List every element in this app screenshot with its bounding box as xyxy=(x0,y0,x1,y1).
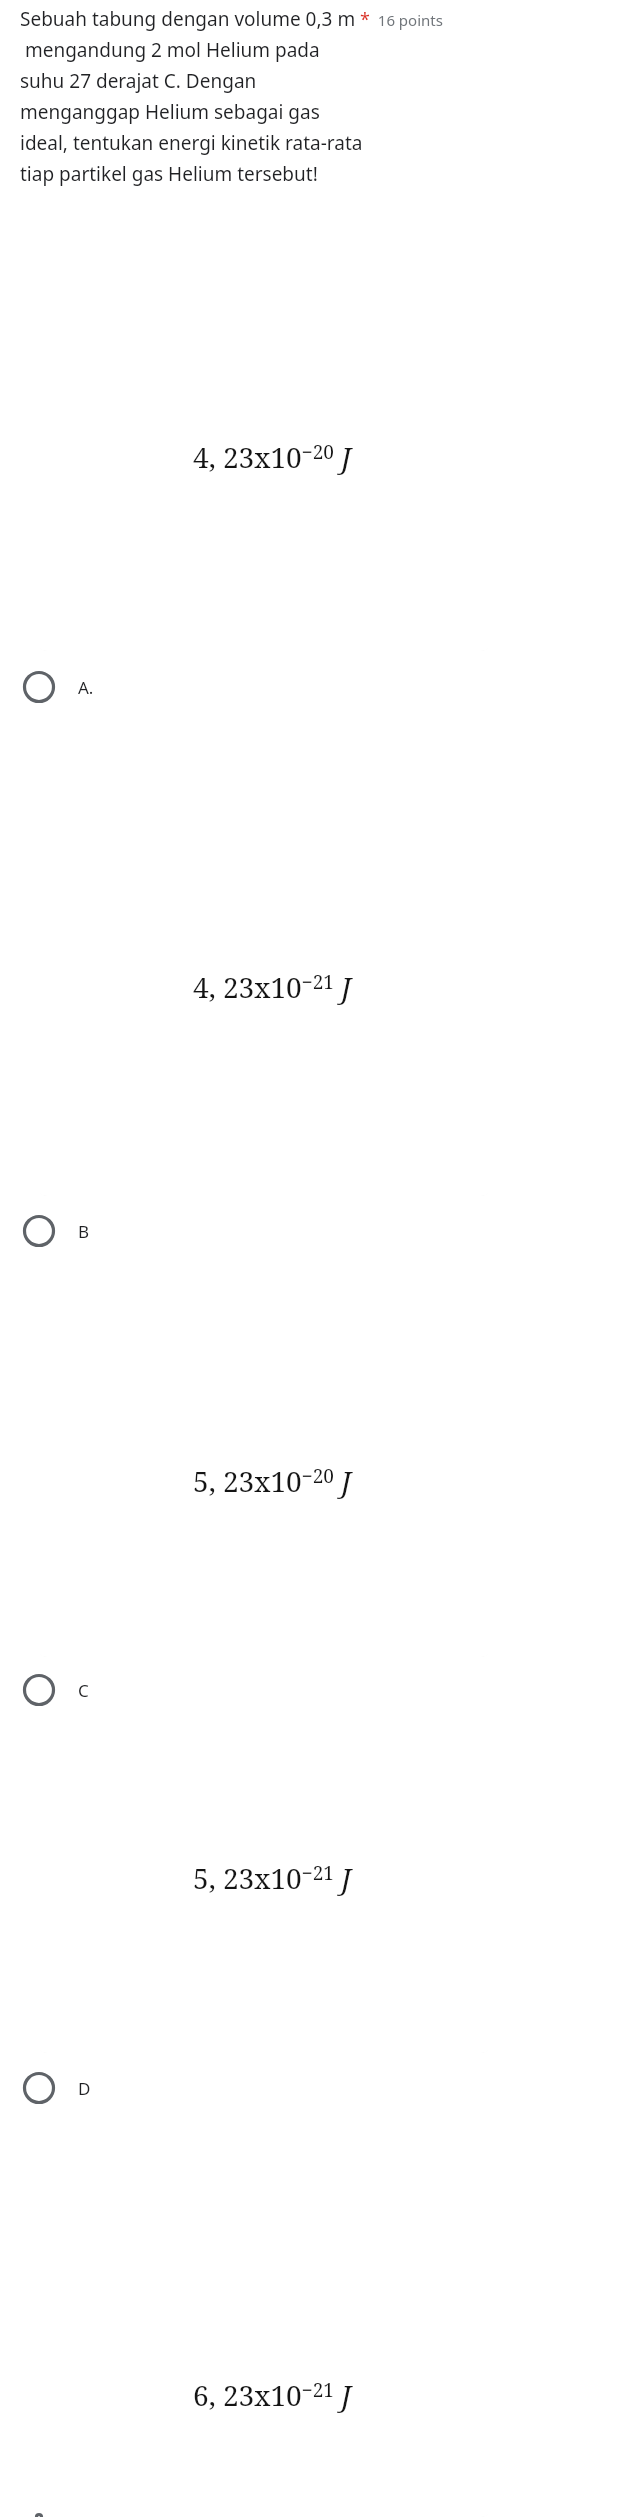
other: Option D xyxy=(22,2071,56,2105)
staticText: 5, 23x10−21 J xyxy=(193,1859,352,1897)
button[interactable]: 4, 23x10−21 J xyxy=(36,768,492,1196)
button[interactable]: Option D xyxy=(0,2063,631,2113)
staticText: 4, 23x10−21 J xyxy=(193,968,352,1006)
staticText: D xyxy=(78,2077,91,2100)
button[interactable]: Option A. xyxy=(0,662,631,712)
button[interactable]: 4, 23x10−20 J xyxy=(36,293,492,651)
button[interactable]: Option C xyxy=(0,1665,631,1715)
staticText: A. xyxy=(78,676,94,699)
other: Option A. xyxy=(22,670,56,704)
button[interactable]: 5, 23x10−20 J xyxy=(36,1302,492,1657)
other: Option B xyxy=(22,1214,56,1248)
button[interactable]: Option B xyxy=(0,1206,631,1256)
staticText: C xyxy=(78,1679,89,1702)
staticText: Sebuah tabung dengan volume 0,3 m * 16 p… xyxy=(20,6,443,187)
staticText: 5, 23x10−20 J xyxy=(193,1462,352,1500)
staticText: 4, 23x10−20 J xyxy=(193,438,352,476)
staticText: 6, 23x10−21 J xyxy=(193,2376,352,2414)
button[interactable]: 6, 23x10−21 J xyxy=(36,2171,492,2517)
button[interactable]: 5, 23x10−21 J xyxy=(36,1775,492,2053)
other: Option C xyxy=(22,1673,56,1707)
staticText: B xyxy=(78,1220,90,1243)
